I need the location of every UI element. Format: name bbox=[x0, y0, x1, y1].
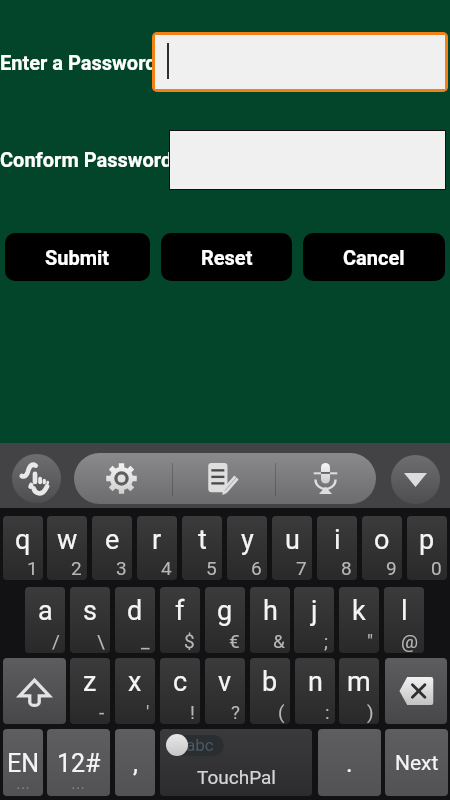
staticText: 8 bbox=[341, 557, 352, 579]
staticText: 4 bbox=[161, 557, 172, 579]
staticText: ? bbox=[231, 701, 240, 723]
button[interactable]: Keyboard settings bbox=[106, 463, 137, 494]
staticText: j bbox=[311, 595, 318, 627]
staticText: ' bbox=[146, 701, 150, 723]
button[interactable]: abc bbox=[167, 735, 224, 756]
button[interactable]: n bbox=[295, 658, 335, 724]
staticText: Next bbox=[395, 751, 439, 776]
button[interactable]: t bbox=[182, 516, 222, 580]
staticText: : bbox=[325, 701, 330, 723]
button[interactable]: Enter a Password field bbox=[155, 35, 445, 89]
button[interactable]: , bbox=[115, 729, 155, 796]
staticText: ( bbox=[278, 701, 285, 723]
button[interactable]: a bbox=[25, 587, 65, 653]
button[interactable]: Voice input bbox=[310, 463, 341, 494]
button[interactable]: TouchPal menu bbox=[12, 454, 61, 503]
staticText: • • • bbox=[17, 784, 30, 793]
button[interactable]: Backspace bbox=[385, 658, 447, 724]
button[interactable]: c bbox=[160, 658, 200, 724]
button[interactable]: o bbox=[362, 516, 402, 580]
staticText: Submit bbox=[45, 246, 110, 269]
button[interactable]: Submit bbox=[5, 233, 150, 281]
staticText: 9 bbox=[386, 557, 397, 579]
staticText: 12# bbox=[57, 749, 101, 778]
staticText: $ bbox=[184, 630, 195, 652]
button[interactable]: b bbox=[250, 658, 290, 724]
staticText: z bbox=[83, 666, 97, 698]
button[interactable]: v bbox=[205, 658, 245, 724]
staticText: - bbox=[99, 701, 105, 723]
button[interactable]: 12# bbox=[47, 729, 110, 796]
button[interactable]: Next bbox=[385, 729, 448, 796]
button[interactable]: EN bbox=[3, 729, 43, 796]
staticText: l bbox=[401, 595, 408, 627]
staticText: m bbox=[347, 666, 371, 698]
staticText: 6 bbox=[251, 557, 262, 579]
staticText: q bbox=[15, 524, 31, 556]
button[interactable]: s bbox=[70, 587, 110, 653]
button[interactable]: y bbox=[227, 516, 267, 580]
staticText: k bbox=[352, 595, 366, 627]
staticText: v bbox=[218, 666, 232, 698]
button[interactable]: f bbox=[160, 587, 200, 653]
button[interactable]: x bbox=[115, 658, 155, 724]
staticText: € bbox=[229, 630, 240, 652]
staticText: p bbox=[419, 524, 435, 556]
button[interactable]: k bbox=[339, 587, 379, 653]
button[interactable]: Space bbox=[160, 729, 312, 796]
staticText: g bbox=[217, 595, 233, 627]
staticText: b bbox=[262, 666, 278, 698]
button[interactable]: p bbox=[407, 516, 447, 580]
button[interactable]: . bbox=[318, 729, 381, 796]
staticText: Enter a Password bbox=[0, 51, 157, 74]
staticText: d bbox=[127, 595, 143, 627]
staticText: \ bbox=[97, 630, 105, 652]
staticText: _ bbox=[141, 630, 150, 652]
staticText: c bbox=[173, 666, 188, 698]
staticText: x bbox=[128, 666, 142, 698]
staticText: EN bbox=[7, 749, 40, 778]
staticText: abc bbox=[186, 735, 214, 755]
button[interactable]: z bbox=[70, 658, 110, 724]
staticText: , bbox=[133, 749, 138, 778]
button[interactable]: d bbox=[115, 587, 155, 653]
staticText: 1 bbox=[27, 557, 38, 579]
staticText: & bbox=[273, 630, 285, 652]
staticText: u bbox=[285, 524, 300, 556]
staticText: / bbox=[52, 630, 60, 652]
staticText: 0 bbox=[431, 557, 442, 579]
staticText: Conform Password bbox=[0, 148, 173, 171]
staticText: ) bbox=[367, 701, 374, 723]
staticText: o bbox=[374, 524, 390, 556]
button[interactable]: g bbox=[205, 587, 245, 653]
button[interactable]: Reset bbox=[161, 233, 292, 281]
button[interactable]: q bbox=[3, 516, 43, 580]
button[interactable]: Cancel bbox=[303, 233, 445, 281]
staticText: 7 bbox=[296, 557, 307, 579]
staticText: @ bbox=[401, 630, 419, 652]
button[interactable]: m bbox=[339, 658, 379, 724]
staticText: 2 bbox=[71, 557, 82, 579]
button[interactable]: l bbox=[384, 587, 424, 653]
staticText: 5 bbox=[206, 557, 217, 579]
staticText: TouchPal bbox=[197, 766, 276, 788]
button[interactable]: r bbox=[137, 516, 177, 580]
button[interactable]: Hide keyboard bbox=[391, 455, 440, 504]
button[interactable]: u bbox=[272, 516, 312, 580]
staticText: y bbox=[241, 524, 254, 556]
staticText: a bbox=[38, 595, 53, 627]
button[interactable]: j bbox=[294, 587, 334, 653]
staticText: w bbox=[57, 524, 78, 556]
staticText: t bbox=[198, 524, 207, 556]
button[interactable]: Edit clipboard bbox=[207, 463, 238, 494]
staticText: ! bbox=[190, 701, 195, 723]
staticText: n bbox=[308, 666, 323, 698]
staticText: i bbox=[334, 524, 341, 556]
button[interactable]: e bbox=[92, 516, 132, 580]
button[interactable]: w bbox=[47, 516, 87, 580]
button[interactable]: Shift bbox=[3, 658, 66, 724]
staticText: Cancel bbox=[343, 246, 405, 269]
button[interactable]: h bbox=[250, 587, 290, 653]
button[interactable]: i bbox=[317, 516, 357, 580]
